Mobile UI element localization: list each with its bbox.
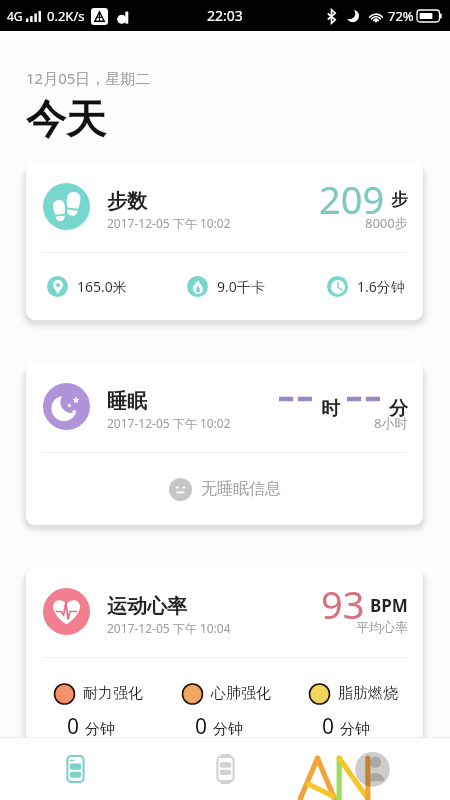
staticText: 22:03: [207, 6, 243, 25]
staticText: 分: [389, 397, 408, 421]
button[interactable]: 运动心率: [26, 568, 423, 758]
staticText: 心肺强化: [211, 684, 271, 703]
staticText: 72%: [388, 7, 414, 25]
staticText: 2017-12-05 下午 10:04: [107, 620, 231, 636]
staticText: BPM: [370, 594, 408, 617]
button[interactable]: Today: [0, 737, 150, 800]
staticText: 时: [321, 397, 340, 421]
staticText: 9.0千卡: [217, 277, 265, 296]
staticText: 0: [322, 712, 335, 741]
staticText: 4G: [7, 8, 23, 24]
staticText: 1.6分钟: [357, 277, 405, 296]
staticText: 分钟: [340, 720, 370, 739]
staticText: 165.0米: [77, 277, 127, 296]
staticText: 睡眠: [107, 389, 147, 414]
button[interactable]: Profile: [300, 737, 450, 800]
staticText: 分钟: [213, 720, 243, 739]
staticText: 脂肪燃烧: [338, 684, 398, 703]
button[interactable]: 步数: [26, 163, 423, 320]
staticText: 12月05日，星期二: [26, 68, 151, 88]
staticText: 无睡眠信息: [201, 479, 281, 499]
button[interactable]: Device: [150, 737, 300, 800]
staticText: 平均心率: [356, 619, 408, 635]
staticText: 8000步: [365, 214, 408, 232]
staticText: 93: [321, 578, 365, 630]
staticText: 0.2K/s: [47, 7, 85, 25]
staticText: 209: [319, 173, 385, 225]
staticText: 0: [195, 712, 208, 741]
staticText: 分钟: [85, 720, 115, 739]
staticText: 0: [67, 712, 80, 741]
staticText: 运动心率: [107, 594, 187, 619]
button[interactable]: 睡眠: [26, 363, 423, 525]
staticText: 8小时: [374, 414, 408, 432]
staticText: 步: [391, 189, 408, 210]
staticText: 今天: [26, 94, 106, 144]
staticText: 2017-12-05 下午 10:02: [107, 415, 231, 431]
staticText: 步数: [107, 189, 147, 214]
staticText: 2017-12-05 下午 10:02: [107, 215, 231, 231]
staticText: 耐力强化: [83, 684, 143, 703]
